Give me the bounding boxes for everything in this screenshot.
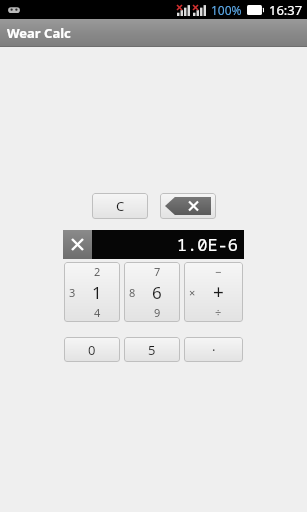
button[interactable]: Key 6 — [124, 262, 180, 322]
button[interactable]: 5 — [124, 337, 180, 362]
staticText: 9 — [154, 305, 161, 320]
button[interactable]: 0 — [64, 337, 120, 362]
staticText: 7 — [154, 264, 161, 279]
staticText: 100% — [211, 2, 242, 18]
button[interactable]: · — [184, 337, 243, 362]
staticText: 16:37 — [269, 1, 303, 19]
staticText: · — [212, 341, 216, 359]
staticText: × — [189, 285, 196, 300]
staticText: 5 — [148, 341, 156, 359]
button[interactable]: Key + — [184, 262, 243, 322]
button[interactable]: Clear entry — [63, 230, 92, 259]
button[interactable]: Key 1 — [64, 262, 120, 322]
staticText: 1.0E-6 — [176, 233, 238, 256]
button[interactable]: Backspace — [160, 193, 216, 219]
staticText: Wear Calc — [7, 24, 71, 42]
staticText: ÷ — [215, 305, 222, 320]
staticText: 3 — [69, 285, 76, 300]
button[interactable]: C — [92, 193, 148, 219]
staticText: 8 — [129, 285, 136, 300]
staticText: − — [215, 264, 222, 279]
staticText: C — [116, 197, 125, 215]
staticText: 4 — [94, 305, 101, 320]
staticText: 2 — [94, 264, 101, 279]
staticText: 0 — [88, 341, 96, 359]
staticText: + — [213, 279, 224, 305]
staticText: 6 — [152, 281, 162, 304]
staticText: 1 — [92, 281, 102, 304]
